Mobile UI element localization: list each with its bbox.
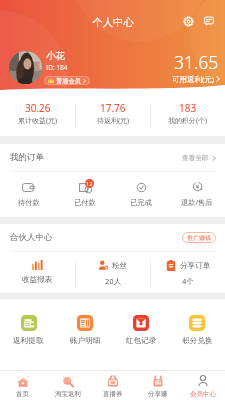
staticText: 个人中心 (92, 16, 134, 29)
staticText: 待返利(元) (97, 116, 130, 126)
button[interactable]: 推广赚钱 (187, 232, 211, 243)
staticText: 淘宝返利 (55, 390, 81, 398)
button[interactable]: 183 (151, 95, 225, 136)
button[interactable]: 分享订单 (151, 252, 225, 293)
button[interactable]: 返利提取 (0, 299, 57, 351)
button[interactable]: 首页 (0, 371, 45, 400)
staticText: 已完成 (130, 198, 152, 207)
button[interactable]: 可用返利(元) (172, 74, 220, 84)
staticText: 收益报表 (22, 275, 53, 285)
button[interactable]: 待付款 (0, 172, 57, 217)
button[interactable]: 12 (57, 172, 113, 217)
button[interactable]: 红包记录 (113, 299, 169, 351)
staticText: 小花 (46, 50, 65, 62)
button[interactable]: Messages (200, 11, 218, 31)
staticText: 积分兑换 (182, 336, 213, 346)
staticText: 推广赚钱 (187, 234, 211, 242)
staticText: 会员中心 (190, 390, 216, 398)
button[interactable]: Settings (179, 11, 197, 31)
staticText: ID: 184 (46, 63, 68, 72)
button[interactable]: 直播券 (90, 371, 135, 400)
button[interactable]: Profile photo (9, 51, 42, 84)
button[interactable]: 淘宝返利 (45, 371, 90, 400)
staticText: 合伙人中心 (10, 232, 53, 243)
staticText: 183 (179, 101, 197, 115)
button[interactable]: 分享赚 (135, 371, 180, 400)
button[interactable]: 普通会员 (48, 76, 86, 85)
button[interactable]: 会员中心 (180, 371, 225, 400)
button[interactable]: 退款/售后 (169, 172, 225, 217)
staticText: 直播券 (103, 390, 123, 398)
button[interactable]: 查看全部 (182, 154, 216, 162)
staticText: 普通会员 (56, 77, 81, 85)
staticText: 我的订单 (10, 152, 44, 163)
button[interactable]: 收益报表 (0, 252, 75, 293)
staticText: 待付款 (18, 198, 40, 207)
button[interactable]: 已完成 (113, 172, 169, 217)
staticText: 退款/售后 (181, 197, 213, 207)
staticText: 12 (86, 180, 93, 187)
button[interactable]: 积分兑换 (169, 299, 225, 351)
staticText: 红包记录 (126, 336, 157, 346)
staticText: 4个 (182, 276, 194, 286)
button[interactable]: 30.26 (0, 95, 75, 136)
staticText: 查看全部 (182, 154, 209, 162)
staticText: 粉丝 (112, 261, 128, 271)
staticText: 返利提取 (13, 336, 44, 346)
staticText: 可用返利(元) (172, 74, 214, 84)
staticText: 我的积分(个) (168, 116, 208, 126)
button[interactable]: 粉丝 (76, 252, 150, 293)
staticText: 累计收益(元) (18, 116, 58, 126)
staticText: 分享赚 (148, 390, 168, 398)
staticText: 20人 (105, 276, 122, 286)
button[interactable]: 17.76 (76, 95, 150, 136)
staticText: 已付款 (74, 198, 96, 207)
staticText: 账户明细 (70, 336, 101, 346)
staticText: 17.76 (100, 101, 126, 115)
staticText: 31.65 (174, 50, 219, 74)
staticText: 30.26 (25, 101, 51, 115)
staticText: 分享订单 (180, 261, 211, 271)
staticText: 首页 (16, 390, 29, 398)
button[interactable]: 账户明细 (57, 299, 113, 351)
